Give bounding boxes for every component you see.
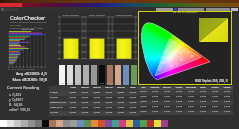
staticText: Gamut Luminance	[111, 14, 137, 17]
staticText: x 0,3129	[50, 111, 67, 114]
staticText: 0,3120	[221, 110, 233, 113]
staticText: 0,3120	[138, 95, 149, 98]
staticText: Orange	[209, 86, 221, 89]
staticText: 0,3120	[209, 95, 221, 98]
staticText: y 0,4957	[9, 97, 24, 102]
staticText: 0,3140	[103, 96, 115, 99]
staticText: 0,3140	[127, 106, 139, 109]
staticText: Black	[127, 86, 139, 89]
staticText: Gray 80	[79, 86, 91, 89]
staticText: 0,3140	[127, 101, 139, 104]
staticText: 0,3140	[91, 96, 103, 99]
staticText: Gray 60	[91, 86, 103, 89]
staticText: 0,3120	[209, 105, 221, 108]
staticText: 0,3140	[115, 91, 127, 94]
staticText: 0,3140	[67, 96, 79, 99]
staticText: 0,3120	[185, 100, 197, 103]
staticText: 0,3120	[138, 100, 149, 103]
staticText: Black	[98, 82, 106, 84]
staticText: Voltage	[173, 86, 185, 89]
staticText: 0,3120	[209, 100, 221, 103]
staticText: 0,3140	[79, 96, 91, 99]
staticText: Target 0,3127	[50, 106, 67, 109]
staticText: 0,3140	[103, 91, 115, 94]
staticText: 0,3120	[185, 110, 197, 113]
staticText: Gamut Luminance	[58, 14, 84, 17]
staticText: 0,3120	[138, 105, 149, 108]
staticText: 0,3140	[91, 111, 103, 114]
staticText: 0,3140	[115, 101, 127, 104]
staticText: 0,3140	[67, 101, 79, 104]
staticText: Gamut Saturation	[84, 14, 110, 17]
staticText: Display analysis is performed with the X…	[10, 21, 48, 33]
staticText: 0,3140	[79, 111, 91, 114]
staticText: 0,3120	[161, 95, 173, 98]
staticText: CIE 1931 xy Chromaticity	[173, 11, 198, 14]
staticText: 0,3120	[221, 105, 233, 108]
staticText: Avg dE2000: 4,5	[0, 71, 47, 77]
staticText: 0,3120	[161, 100, 173, 103]
staticText: 0,3120	[209, 110, 221, 113]
staticText: 0 2 4 6 8 10 12 14 16 18 20	[8, 68, 46, 71]
staticText: cd/m² 195,51	[9, 107, 31, 112]
staticText: 0,3140	[115, 106, 127, 109]
staticText: 0,3120	[185, 105, 197, 108]
staticText: 0,3140	[79, 106, 91, 109]
staticText: 0,3120	[173, 105, 185, 108]
staticText: 0,3120	[149, 95, 161, 98]
staticText: x 0,3134	[50, 96, 67, 99]
staticText: Dark Skin	[106, 82, 114, 84]
staticText: 0,3140	[103, 101, 115, 104]
staticText: x 130,97	[50, 91, 67, 94]
staticText: 0,3140	[115, 111, 127, 114]
staticText: 0,3120	[221, 90, 233, 93]
staticText: 0,3140	[67, 111, 79, 114]
staticText: Gray 40	[103, 86, 115, 89]
staticText: 0,3140	[79, 91, 91, 94]
staticText: 0,3120	[161, 110, 173, 113]
staticText: Stim	[138, 86, 149, 89]
staticText: 0,3120	[173, 100, 185, 103]
staticText: 0,3140	[91, 91, 103, 94]
staticText: Blue	[122, 82, 130, 84]
staticText: White	[67, 86, 79, 89]
staticText: 0,3140	[79, 101, 91, 104]
staticText: 0,3120	[138, 90, 149, 93]
staticText: 0,3120	[185, 90, 197, 93]
staticText: 0,3140	[127, 96, 139, 99]
staticText: 0,3120	[173, 110, 185, 113]
staticText: Blue Out	[161, 86, 173, 89]
staticText: Gray 20	[115, 86, 127, 89]
staticText: Result	[197, 86, 209, 89]
staticText: 0,3120	[161, 90, 173, 93]
staticText: 0,3140	[91, 101, 103, 104]
staticText: 0,3120	[185, 95, 197, 98]
staticText: 0,3140	[127, 111, 139, 114]
staticText: 0,3120	[149, 105, 161, 108]
staticText: 0,3120	[197, 100, 209, 103]
staticText: 0,3120	[173, 90, 185, 93]
staticText: 0,3140	[103, 106, 115, 109]
staticText: Gray 20	[90, 82, 98, 84]
staticText: 0,3140	[67, 106, 79, 109]
staticText: fL 64,36	[9, 102, 23, 107]
staticText: Max dE2000: 19,8	[0, 77, 47, 83]
staticText: 0,3140	[115, 96, 127, 99]
staticText: Target x/y 0,3127	[50, 101, 67, 104]
staticText: 0,3140	[91, 106, 103, 109]
staticText: 0,3120	[149, 110, 161, 113]
staticText: 0,3120	[221, 95, 233, 98]
staticText: 0,3140	[67, 91, 79, 94]
staticText: Delta E 2000	[22, 28, 35, 31]
staticText: Gray 80	[66, 82, 74, 84]
staticText: Light Out	[149, 86, 161, 89]
staticText: 0,3140	[127, 91, 139, 94]
